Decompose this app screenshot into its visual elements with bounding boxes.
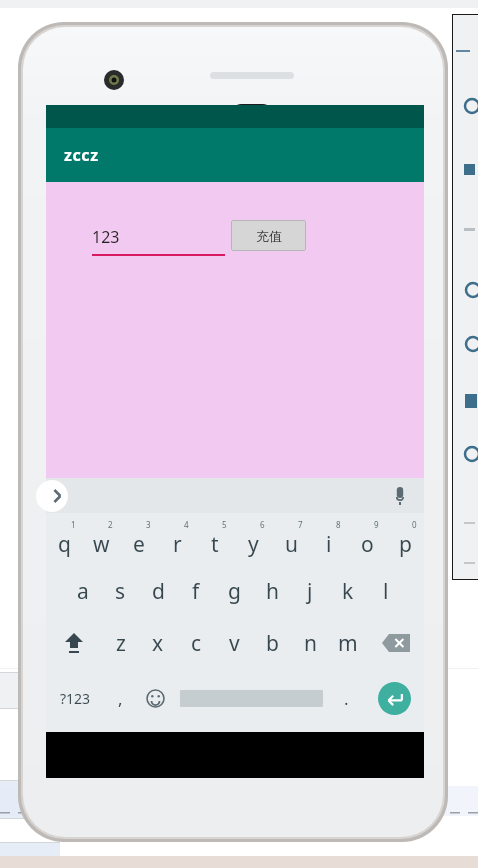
staticText: ?123 bbox=[60, 689, 91, 708]
button[interactable]: 5 bbox=[196, 513, 234, 565]
button[interactable]: 0 bbox=[386, 513, 424, 565]
staticText: v bbox=[229, 629, 240, 658]
button[interactable]: v bbox=[215, 617, 253, 669]
button[interactable]: c bbox=[177, 617, 215, 669]
button[interactable]: Delete bbox=[367, 617, 424, 669]
button[interactable]: 3 bbox=[120, 513, 158, 565]
staticText: s bbox=[115, 577, 126, 606]
button[interactable]: x bbox=[139, 617, 177, 669]
staticText: w bbox=[93, 530, 110, 559]
staticText: r bbox=[173, 530, 182, 559]
staticText: u bbox=[285, 530, 298, 559]
staticText: z bbox=[116, 629, 126, 658]
button[interactable]: 9 bbox=[348, 513, 386, 565]
staticText: n bbox=[304, 629, 317, 658]
staticText: a bbox=[77, 577, 89, 606]
staticText: j bbox=[307, 577, 313, 606]
button[interactable]: s bbox=[101, 565, 139, 617]
staticText: o bbox=[361, 530, 374, 559]
button[interactable]: 1 bbox=[46, 513, 83, 565]
staticText: i bbox=[326, 530, 332, 559]
button[interactable] bbox=[174, 669, 328, 727]
staticText: 4 bbox=[184, 519, 189, 530]
staticText: , bbox=[118, 687, 123, 710]
staticText: 3 bbox=[146, 519, 151, 530]
button[interactable]: j bbox=[291, 565, 329, 617]
staticText: 1 bbox=[71, 519, 76, 530]
button[interactable]: Emoji bbox=[137, 669, 174, 727]
button[interactable]: d bbox=[139, 565, 177, 617]
staticText: 2 bbox=[108, 519, 113, 530]
staticText: g bbox=[228, 577, 241, 606]
staticText: t bbox=[211, 530, 219, 559]
button[interactable]: g bbox=[215, 565, 253, 617]
staticText: h bbox=[266, 577, 279, 606]
button[interactable]: 6 bbox=[234, 513, 272, 565]
button[interactable]: Voice input bbox=[388, 484, 412, 508]
staticText: m bbox=[338, 629, 358, 658]
button[interactable]: 2 bbox=[83, 513, 120, 565]
button[interactable]: 8 bbox=[310, 513, 348, 565]
button[interactable]: 7 bbox=[272, 513, 310, 565]
button[interactable]: l bbox=[367, 565, 405, 617]
button[interactable]: z bbox=[102, 617, 139, 669]
button[interactable]: b bbox=[253, 617, 291, 669]
button[interactable]: . bbox=[328, 669, 365, 727]
staticText: d bbox=[152, 577, 165, 606]
staticText: x bbox=[152, 629, 164, 658]
button[interactable]: f bbox=[177, 565, 215, 617]
button[interactable]: Shift bbox=[46, 617, 102, 669]
staticText: c bbox=[191, 629, 202, 658]
button[interactable]: Enter bbox=[378, 682, 411, 715]
button[interactable]: Expand suggestions bbox=[36, 480, 68, 512]
button[interactable]: , bbox=[104, 669, 137, 727]
button[interactable]: h bbox=[253, 565, 291, 617]
button[interactable]: 4 bbox=[158, 513, 196, 565]
staticText: b bbox=[266, 629, 279, 658]
button[interactable]: zccz bbox=[46, 128, 424, 182]
staticText: 7 bbox=[298, 519, 303, 530]
button[interactable]: 充值 bbox=[231, 220, 306, 251]
button[interactable]: m bbox=[329, 617, 367, 669]
staticText: k bbox=[342, 577, 354, 606]
button[interactable]: a bbox=[64, 565, 101, 617]
staticText: f bbox=[192, 577, 200, 606]
staticText: y bbox=[248, 530, 259, 559]
staticText: 5 bbox=[222, 519, 227, 530]
staticText: 8 bbox=[336, 519, 341, 530]
staticText: zccz bbox=[64, 144, 99, 166]
staticText: e bbox=[133, 530, 145, 559]
staticText: p bbox=[399, 530, 412, 559]
staticText: l bbox=[383, 577, 389, 606]
button[interactable]: 123 bbox=[92, 226, 225, 256]
staticText: 123 bbox=[92, 226, 120, 248]
staticText: 6 bbox=[260, 519, 265, 530]
staticText: 充值 bbox=[256, 228, 282, 244]
button[interactable]: n bbox=[291, 617, 329, 669]
staticText: 0 bbox=[412, 519, 417, 530]
staticText: q bbox=[58, 530, 71, 559]
staticText: 9 bbox=[374, 519, 379, 530]
staticText: . bbox=[344, 687, 349, 710]
button[interactable]: k bbox=[329, 565, 367, 617]
button[interactable]: ?123 bbox=[46, 669, 104, 727]
